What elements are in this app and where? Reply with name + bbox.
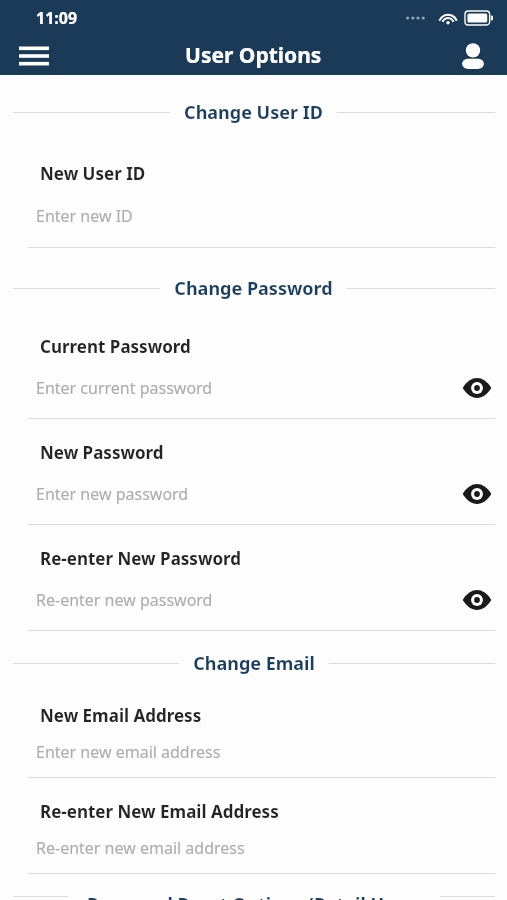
button[interactable]: Show password: [459, 582, 495, 618]
staticText: New Email Address: [40, 704, 202, 727]
button[interactable]: New Password: [0, 419, 507, 525]
button[interactable]: New Email Address: [0, 676, 507, 778]
staticText: Re-enter new password: [36, 589, 459, 611]
staticText: Change Password: [174, 276, 333, 301]
staticText: Enter new email address: [36, 741, 495, 763]
button[interactable]: Re-enter New Password: [0, 525, 507, 631]
staticText: Enter new password: [36, 483, 459, 505]
button[interactable]: Menu: [12, 36, 56, 75]
staticText: Current Password: [40, 335, 191, 358]
button[interactable]: Show password: [459, 370, 495, 406]
staticText: Enter current password: [36, 377, 459, 399]
staticText: 11:09: [36, 7, 78, 29]
button[interactable]: Re-enter New Email Address: [0, 778, 507, 874]
button[interactable]: Current Password: [0, 301, 507, 419]
staticText: New User ID: [40, 162, 146, 185]
button[interactable]: New User ID: [0, 125, 507, 248]
button[interactable]: Account: [451, 36, 495, 75]
staticText: Password Reset Options (Retail Users Onl…: [78, 892, 430, 900]
staticText: New Password: [40, 441, 164, 464]
staticText: Re-enter New Email Address: [40, 800, 279, 823]
staticText: Change User ID: [184, 100, 323, 125]
staticText: Re-enter new email address: [36, 837, 495, 859]
staticText: User Options: [185, 41, 322, 70]
button[interactable]: Show password: [459, 476, 495, 512]
staticText: Enter new ID: [36, 205, 495, 227]
staticText: Re-enter New Password: [40, 547, 242, 570]
staticText: Change Email: [193, 651, 315, 676]
